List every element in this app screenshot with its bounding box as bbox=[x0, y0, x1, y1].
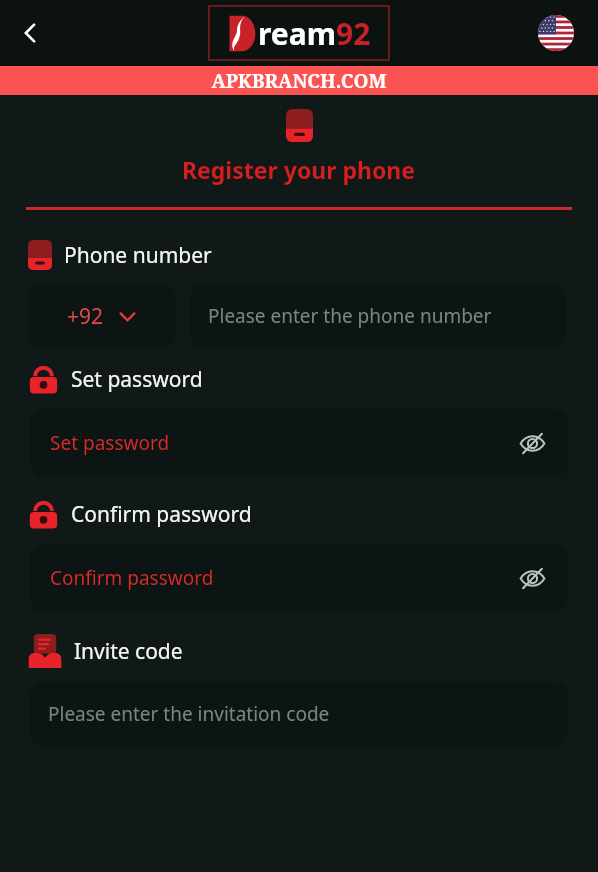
staticText: Set password bbox=[71, 365, 203, 394]
staticText: Confirm password bbox=[50, 565, 214, 591]
button[interactable]: Back bbox=[6, 9, 54, 57]
staticText: Set password bbox=[50, 430, 170, 456]
staticText: Confirm password bbox=[71, 500, 252, 529]
staticText: APKBRANCH.COM bbox=[211, 68, 387, 94]
button[interactable]: Set password bbox=[30, 409, 568, 477]
staticText: ream bbox=[258, 13, 336, 54]
button[interactable]: Change language bbox=[534, 11, 578, 55]
staticText: +92 bbox=[67, 302, 104, 331]
staticText: 92 bbox=[336, 13, 371, 54]
button[interactable]: Toggle password visibility bbox=[510, 421, 554, 465]
staticText: Invite code bbox=[74, 637, 183, 666]
button[interactable]: Please enter the phone number bbox=[190, 284, 566, 348]
staticText: Phone number bbox=[64, 241, 212, 270]
staticText: Please enter the invitation code bbox=[48, 701, 330, 727]
button[interactable]: ream bbox=[209, 6, 389, 60]
button[interactable]: +92 bbox=[28, 284, 176, 348]
button[interactable]: Please enter the invitation code bbox=[30, 682, 568, 746]
button[interactable]: Confirm password bbox=[30, 544, 568, 612]
staticText: Please enter the phone number bbox=[208, 303, 492, 329]
staticText: Register your phone bbox=[182, 154, 416, 185]
button[interactable]: Toggle password visibility bbox=[510, 556, 554, 600]
